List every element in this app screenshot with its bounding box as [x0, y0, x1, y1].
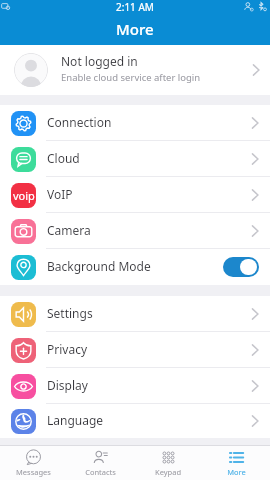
staticText: Not logged in — [61, 53, 138, 69]
staticText: Enable cloud service after login — [61, 71, 201, 84]
button[interactable]: Camera — [0, 213, 270, 249]
staticText: Keypad — [155, 467, 181, 477]
staticText: Contacts — [85, 467, 116, 477]
button[interactable]: Cloud — [0, 141, 270, 177]
button[interactable]: Privacy — [0, 332, 270, 368]
staticText: Settings — [47, 305, 93, 321]
button[interactable]: Background Mode — [0, 249, 270, 285]
staticText: Connection — [47, 114, 112, 130]
staticText: Privacy — [47, 341, 88, 357]
button[interactable]: Keypad — [134, 446, 202, 480]
staticText: VoIP — [47, 186, 73, 202]
button[interactable]: Connection — [0, 105, 270, 141]
staticText: More — [227, 467, 246, 477]
button[interactable]: voip — [0, 177, 270, 213]
staticText: More — [116, 19, 154, 39]
staticText: Messages — [16, 467, 51, 477]
staticText: Cloud — [47, 150, 80, 166]
staticText: Camera — [47, 222, 91, 238]
button[interactable]: Display — [0, 368, 270, 404]
staticText: Display — [47, 377, 88, 393]
button[interactable]: Settings — [0, 296, 270, 332]
button[interactable]: Not logged in — [0, 45, 270, 95]
staticText: Language — [47, 412, 104, 428]
staticText: Background Mode — [47, 258, 151, 274]
staticText: 2:11 AM — [116, 0, 154, 13]
button[interactable]: Messages — [0, 446, 67, 480]
button[interactable]: Language — [0, 404, 270, 438]
button[interactable]: More — [202, 446, 270, 480]
staticText: voip — [13, 188, 35, 203]
button[interactable]: Background Mode toggle — [223, 257, 259, 277]
button[interactable]: Contacts — [67, 446, 134, 480]
